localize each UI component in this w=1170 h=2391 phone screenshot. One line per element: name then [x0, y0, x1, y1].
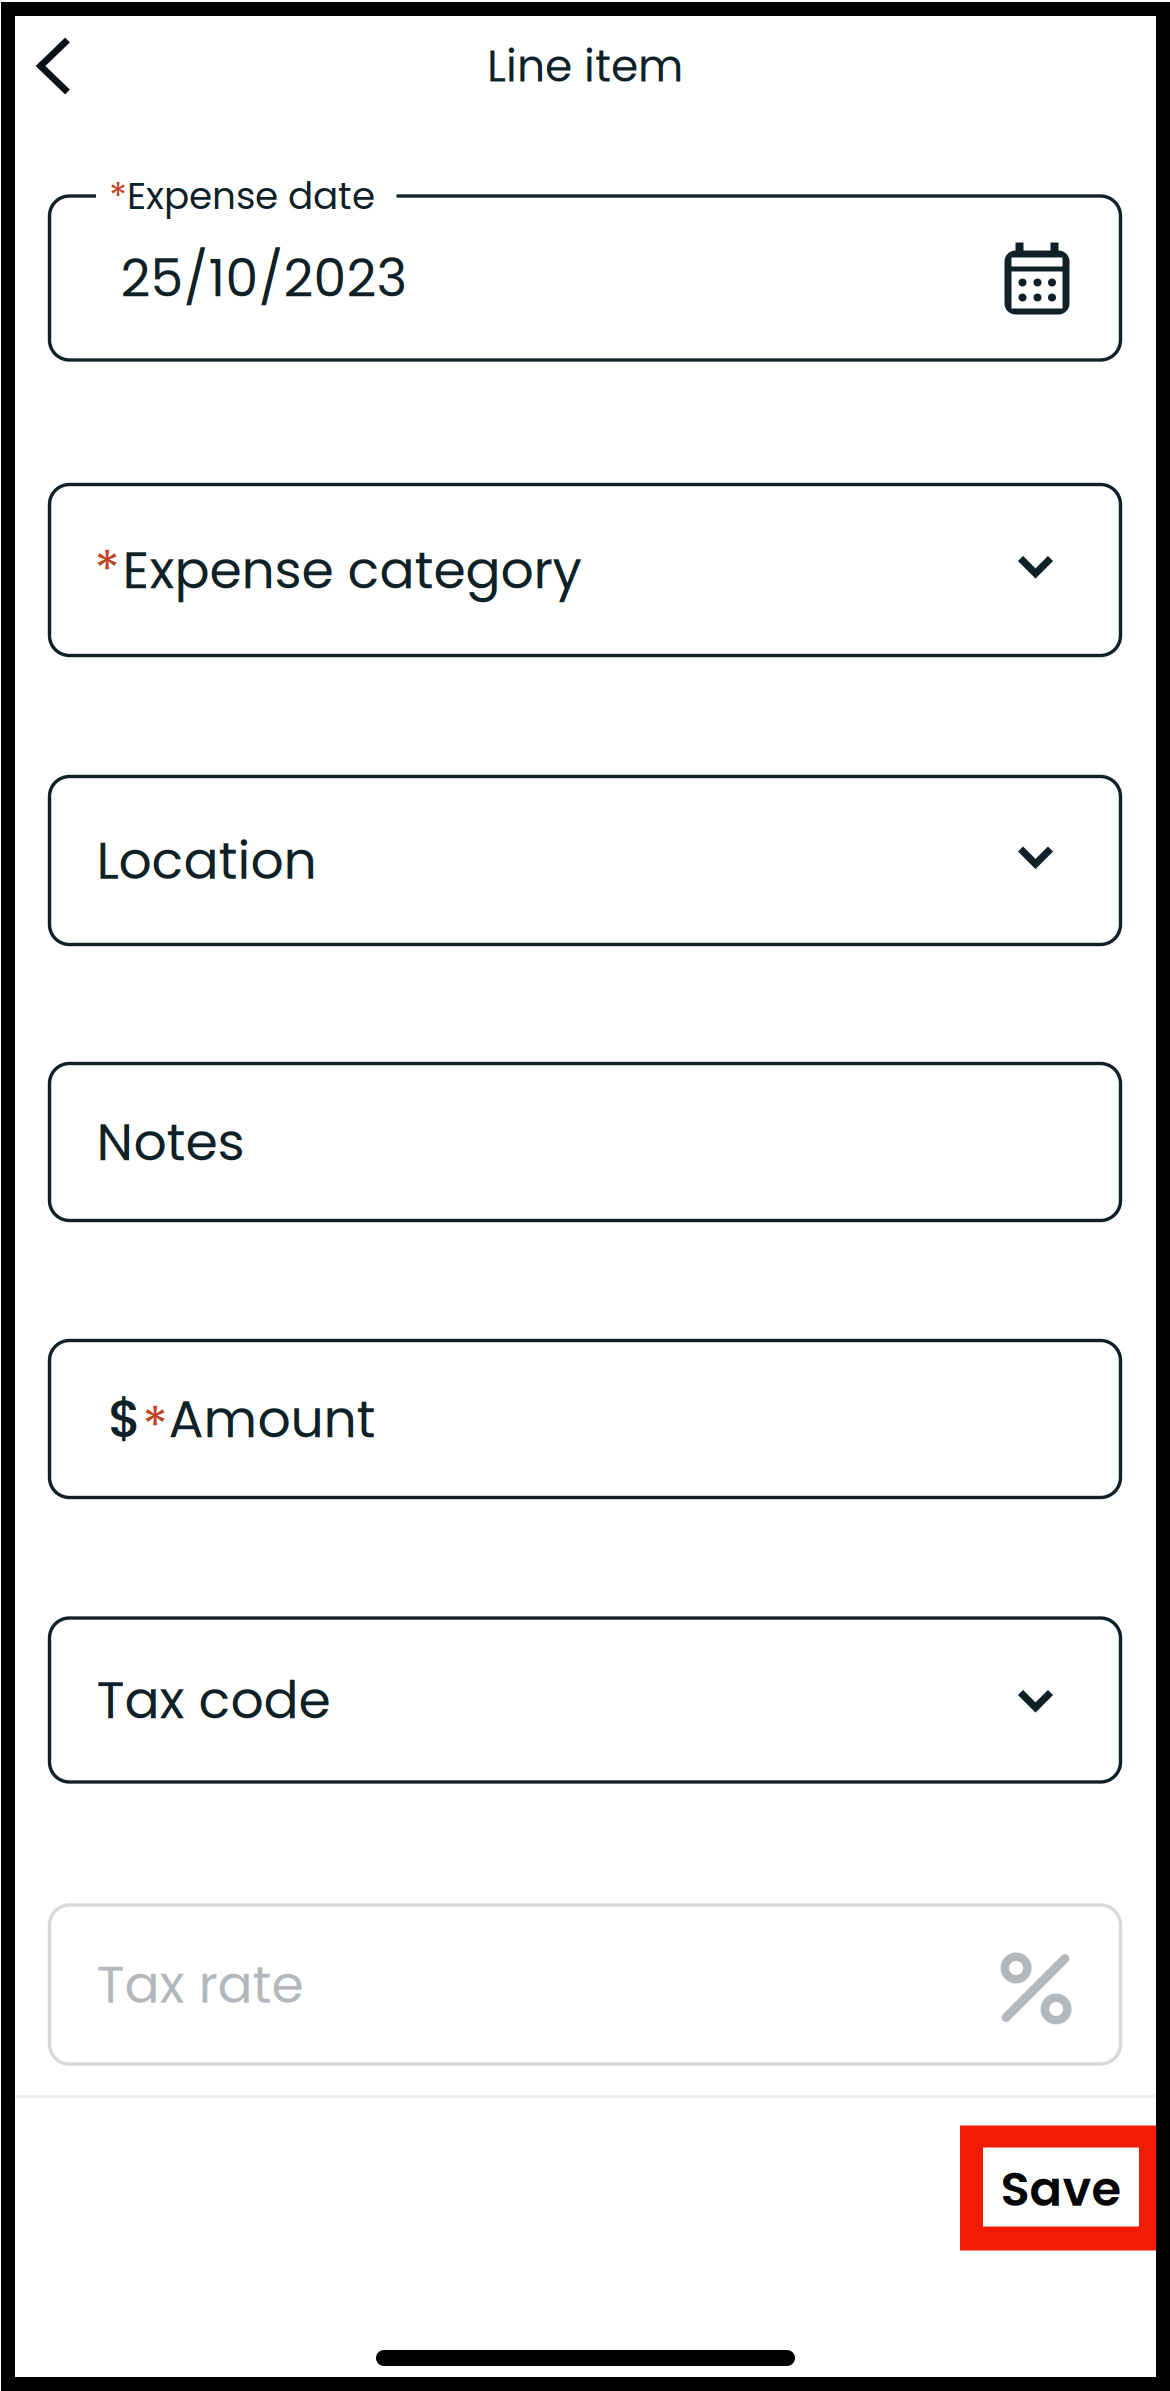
button[interactable]: Tax code [49, 1618, 1120, 1782]
button[interactable]: Choose date [979, 218, 1094, 338]
staticText: Tax rate [96, 1948, 303, 2021]
staticText: $ [108, 1383, 142, 1455]
staticText: Tax code [96, 1664, 330, 1736]
staticText: Amount [168, 1383, 375, 1455]
staticText: * [94, 534, 119, 606]
staticText: 25/10/2023 [120, 242, 407, 314]
button[interactable]: $ [49, 1340, 1120, 1497]
button[interactable]: Notes [49, 1063, 1120, 1220]
staticText: Notes [96, 1106, 244, 1178]
staticText: Expense category [122, 534, 581, 606]
staticText: Save [1000, 2155, 1121, 2223]
staticText: Line item [487, 35, 683, 97]
button[interactable]: Location [49, 776, 1120, 944]
staticText: * [142, 1390, 167, 1462]
staticText: * [109, 171, 127, 223]
staticText: Location [96, 824, 316, 897]
button[interactable]: Back [0, 11, 109, 121]
button[interactable]: Save [960, 2125, 1162, 2250]
button[interactable]: * [49, 484, 1120, 655]
staticText: Expense date [127, 170, 375, 222]
